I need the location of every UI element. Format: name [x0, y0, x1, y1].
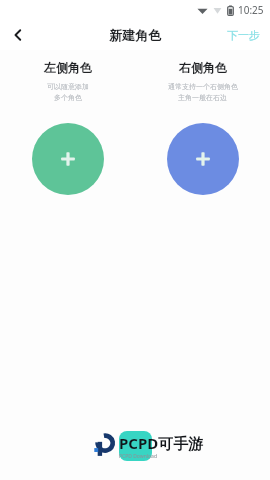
staticText: 左侧角色 — [44, 60, 92, 75]
staticText: 下一步 — [227, 28, 260, 42]
button[interactable]: Back — [0, 20, 36, 50]
staticText: PCPD可手游 — [119, 433, 204, 453]
staticText: 主角一般在右边 — [178, 93, 227, 102]
staticText: 可以随意添加 — [47, 82, 89, 91]
staticText: 右侧角色 — [179, 60, 227, 75]
button[interactable]: 下一步 — [217, 20, 270, 50]
staticText: 10:25 — [238, 3, 264, 17]
staticText: PCPD Download — [119, 453, 157, 460]
button[interactable]: Add left role — [32, 123, 104, 195]
staticText: 新建角色 — [109, 27, 161, 43]
staticText: 多个角色 — [54, 93, 82, 102]
button[interactable]: Add right role — [167, 123, 239, 195]
staticText: 通常支持一个右侧角色 — [168, 82, 238, 91]
